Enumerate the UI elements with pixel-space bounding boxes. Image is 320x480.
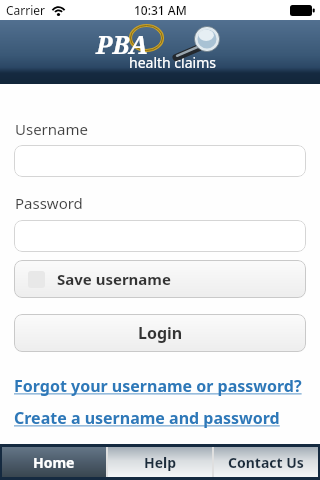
button[interactable]: Create a username and password <box>14 407 280 429</box>
staticText: Save username <box>57 269 171 289</box>
staticText: health claims <box>129 53 216 72</box>
staticText: Login <box>138 322 183 344</box>
staticText: Contact Us <box>228 453 304 472</box>
staticText: Username <box>15 119 88 139</box>
staticText: PBA <box>96 27 148 61</box>
staticText: 10:31 AM <box>134 2 187 18</box>
button[interactable]: Save username <box>14 260 306 298</box>
staticText: Home <box>33 453 75 472</box>
button[interactable] <box>14 220 306 252</box>
button[interactable]: Login <box>14 314 306 352</box>
button[interactable] <box>14 145 306 177</box>
staticText: Help <box>144 453 177 472</box>
button[interactable]: Home <box>2 447 106 477</box>
button[interactable]: Forgot your username or password? <box>14 375 302 397</box>
button[interactable]: Help <box>108 447 212 477</box>
staticText: Password <box>15 193 83 213</box>
button[interactable]: Contact Us <box>214 447 318 477</box>
staticText: Carrier <box>6 2 46 18</box>
